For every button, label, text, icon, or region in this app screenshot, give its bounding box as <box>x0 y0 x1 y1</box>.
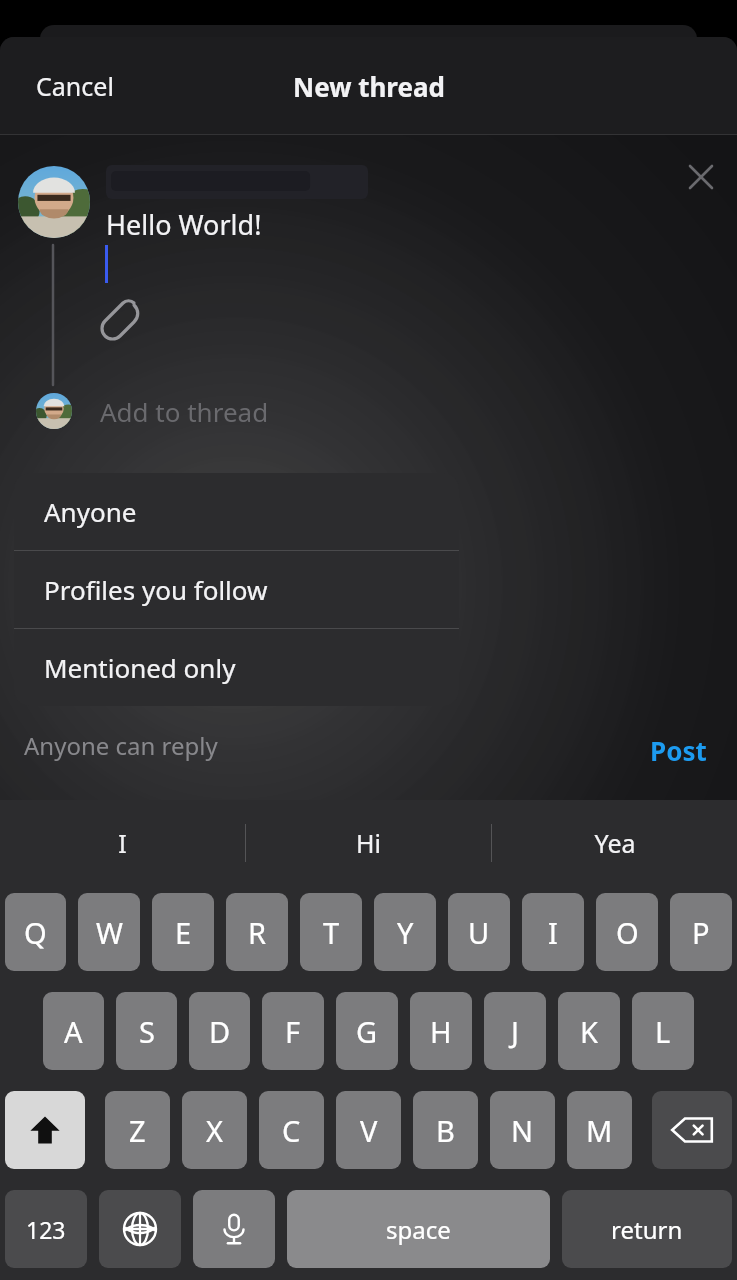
staticText: Y <box>397 913 414 952</box>
button[interactable]: Yea <box>492 800 737 885</box>
staticText: H <box>430 1012 452 1051</box>
button[interactable]: I <box>522 893 584 971</box>
button[interactable]: T <box>300 893 362 971</box>
staticText: O <box>616 913 639 952</box>
staticText: Hello World! <box>106 206 262 243</box>
button[interactable]: N <box>490 1091 555 1169</box>
button[interactable]: X <box>182 1091 247 1169</box>
button[interactable]: 123 <box>5 1190 87 1268</box>
button[interactable]: I <box>0 800 245 885</box>
button[interactable]: M <box>567 1091 632 1169</box>
staticText: X <box>206 1111 223 1150</box>
button[interactable]: P <box>670 893 732 971</box>
staticText: Yea <box>594 826 636 860</box>
button[interactable]: D <box>189 992 250 1070</box>
button[interactable]: R <box>226 893 288 971</box>
button[interactable]: Dictate <box>193 1190 275 1268</box>
button[interactable]: A <box>43 992 104 1070</box>
staticText: I <box>548 913 558 952</box>
button[interactable]: V <box>336 1091 401 1169</box>
button[interactable]: S <box>116 992 177 1070</box>
button[interactable]: Remove post <box>673 149 729 205</box>
button[interactable]: E <box>152 893 214 971</box>
staticText: G <box>356 1012 378 1051</box>
staticText: K <box>580 1012 598 1051</box>
staticText: T <box>323 913 340 952</box>
staticText: J <box>511 1012 519 1051</box>
staticText: W <box>96 913 123 952</box>
staticText: Anyone <box>44 494 137 529</box>
staticText: New thread <box>293 69 445 104</box>
staticText: Hi <box>356 826 381 860</box>
staticText: S <box>139 1012 155 1051</box>
staticText: Q <box>24 913 47 952</box>
button[interactable]: Add attachment <box>96 290 152 346</box>
staticText: D <box>209 1012 231 1051</box>
staticText: 123 <box>26 1214 66 1245</box>
staticText: Profiles you follow <box>44 572 268 607</box>
staticText: Z <box>129 1111 146 1150</box>
button[interactable]: G <box>336 992 398 1070</box>
staticText: A <box>64 1012 83 1051</box>
button[interactable]: Backspace <box>652 1091 732 1169</box>
button[interactable]: C <box>259 1091 324 1169</box>
staticText: Mentioned only <box>44 650 236 685</box>
button[interactable]: Y <box>374 893 436 971</box>
staticText: N <box>511 1111 534 1150</box>
staticText: I <box>118 826 127 860</box>
button[interactable]: Add to thread <box>100 385 269 437</box>
staticText: Add to thread <box>100 394 269 429</box>
button[interactable]: Profiles you follow <box>14 551 459 628</box>
staticText: P <box>692 913 710 952</box>
staticText: Anyone can reply <box>24 729 218 762</box>
button[interactable]: Z <box>105 1091 170 1169</box>
staticText: R <box>248 913 267 952</box>
button[interactable]: K <box>558 992 620 1070</box>
staticText: M <box>586 1111 613 1150</box>
staticText: L <box>655 1012 671 1051</box>
staticText: C <box>282 1111 301 1150</box>
staticText: F <box>285 1012 301 1051</box>
button[interactable]: Mentioned only <box>14 629 459 706</box>
staticText: V <box>360 1111 378 1150</box>
staticText: B <box>436 1111 455 1150</box>
button[interactable]: Post <box>644 725 713 776</box>
button[interactable]: Cancel <box>22 59 128 113</box>
button[interactable]: L <box>632 992 694 1070</box>
button[interactable]: Switch keyboard language <box>99 1190 181 1268</box>
button[interactable]: F <box>262 992 324 1070</box>
button[interactable]: U <box>448 893 510 971</box>
button[interactable]: B <box>413 1091 478 1169</box>
staticText: U <box>468 913 490 952</box>
button[interactable]: O <box>596 893 658 971</box>
staticText: return <box>611 1213 683 1246</box>
button[interactable]: return <box>562 1190 732 1268</box>
staticText: space <box>386 1213 451 1246</box>
staticText: E <box>175 913 192 952</box>
button[interactable]: W <box>78 893 140 971</box>
button[interactable]: Q <box>5 893 66 971</box>
button[interactable]: Hi <box>246 800 491 885</box>
staticText: Post <box>650 733 707 768</box>
button[interactable]: Shift <box>5 1091 85 1169</box>
button[interactable]: Anyone <box>14 473 459 550</box>
button[interactable]: H <box>410 992 472 1070</box>
button[interactable]: space <box>287 1190 550 1268</box>
staticText: Cancel <box>36 69 114 103</box>
button[interactable]: J <box>484 992 546 1070</box>
